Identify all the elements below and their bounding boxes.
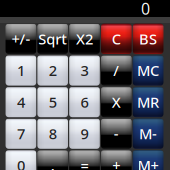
staticText: 0 bbox=[141, 0, 150, 19]
staticText: / bbox=[113, 61, 119, 80]
staticText: MR bbox=[137, 92, 159, 112]
button[interactable]: . bbox=[37, 149, 69, 170]
button[interactable]: C bbox=[100, 23, 132, 55]
staticText: C bbox=[112, 29, 121, 49]
staticText: 9 bbox=[80, 124, 88, 143]
staticText: X bbox=[112, 92, 121, 112]
button[interactable]: / bbox=[100, 55, 132, 86]
button[interactable]: X bbox=[100, 86, 132, 118]
staticText: + bbox=[112, 155, 120, 170]
button[interactable]: +/- bbox=[5, 23, 37, 55]
staticText: 6 bbox=[80, 92, 88, 112]
staticText: 7 bbox=[17, 124, 25, 143]
staticText: . bbox=[51, 155, 55, 170]
button[interactable]: 8 bbox=[37, 118, 69, 149]
button[interactable]: MR bbox=[132, 86, 164, 118]
staticText: 3 bbox=[80, 61, 88, 80]
staticText: X2 bbox=[76, 29, 93, 49]
button[interactable]: Sqrt bbox=[37, 23, 69, 55]
staticText: M- bbox=[139, 124, 157, 143]
button[interactable]: X2 bbox=[69, 23, 100, 55]
button[interactable]: 4 bbox=[5, 86, 37, 118]
button[interactable]: - bbox=[100, 118, 132, 149]
button[interactable]: M- bbox=[132, 118, 164, 149]
staticText: BS bbox=[139, 29, 157, 49]
staticText: 2 bbox=[49, 61, 57, 80]
staticText: MC bbox=[137, 61, 159, 80]
staticText: = bbox=[80, 155, 88, 170]
staticText: - bbox=[114, 124, 119, 143]
staticText: M+ bbox=[138, 155, 159, 170]
staticText: 8 bbox=[49, 124, 57, 143]
button[interactable]: = bbox=[69, 149, 100, 170]
button[interactable]: M+ bbox=[132, 149, 164, 170]
button[interactable]: 5 bbox=[37, 86, 69, 118]
staticText: 5 bbox=[49, 92, 57, 112]
staticText: 1 bbox=[17, 61, 25, 80]
button[interactable]: MC bbox=[132, 55, 164, 86]
button[interactable]: 2 bbox=[37, 55, 69, 86]
staticText: Sqrt bbox=[38, 29, 67, 49]
button[interactable]: 9 bbox=[69, 118, 100, 149]
button[interactable]: BS bbox=[132, 23, 164, 55]
button[interactable]: 1 bbox=[5, 55, 37, 86]
staticText: 4 bbox=[17, 92, 25, 112]
button[interactable]: 7 bbox=[5, 118, 37, 149]
staticText: 0 bbox=[17, 155, 25, 170]
button[interactable]: 0 bbox=[5, 149, 37, 170]
button[interactable]: 3 bbox=[69, 55, 100, 86]
button[interactable]: 6 bbox=[69, 86, 100, 118]
staticText: +/- bbox=[11, 29, 30, 49]
button[interactable]: + bbox=[100, 149, 132, 170]
